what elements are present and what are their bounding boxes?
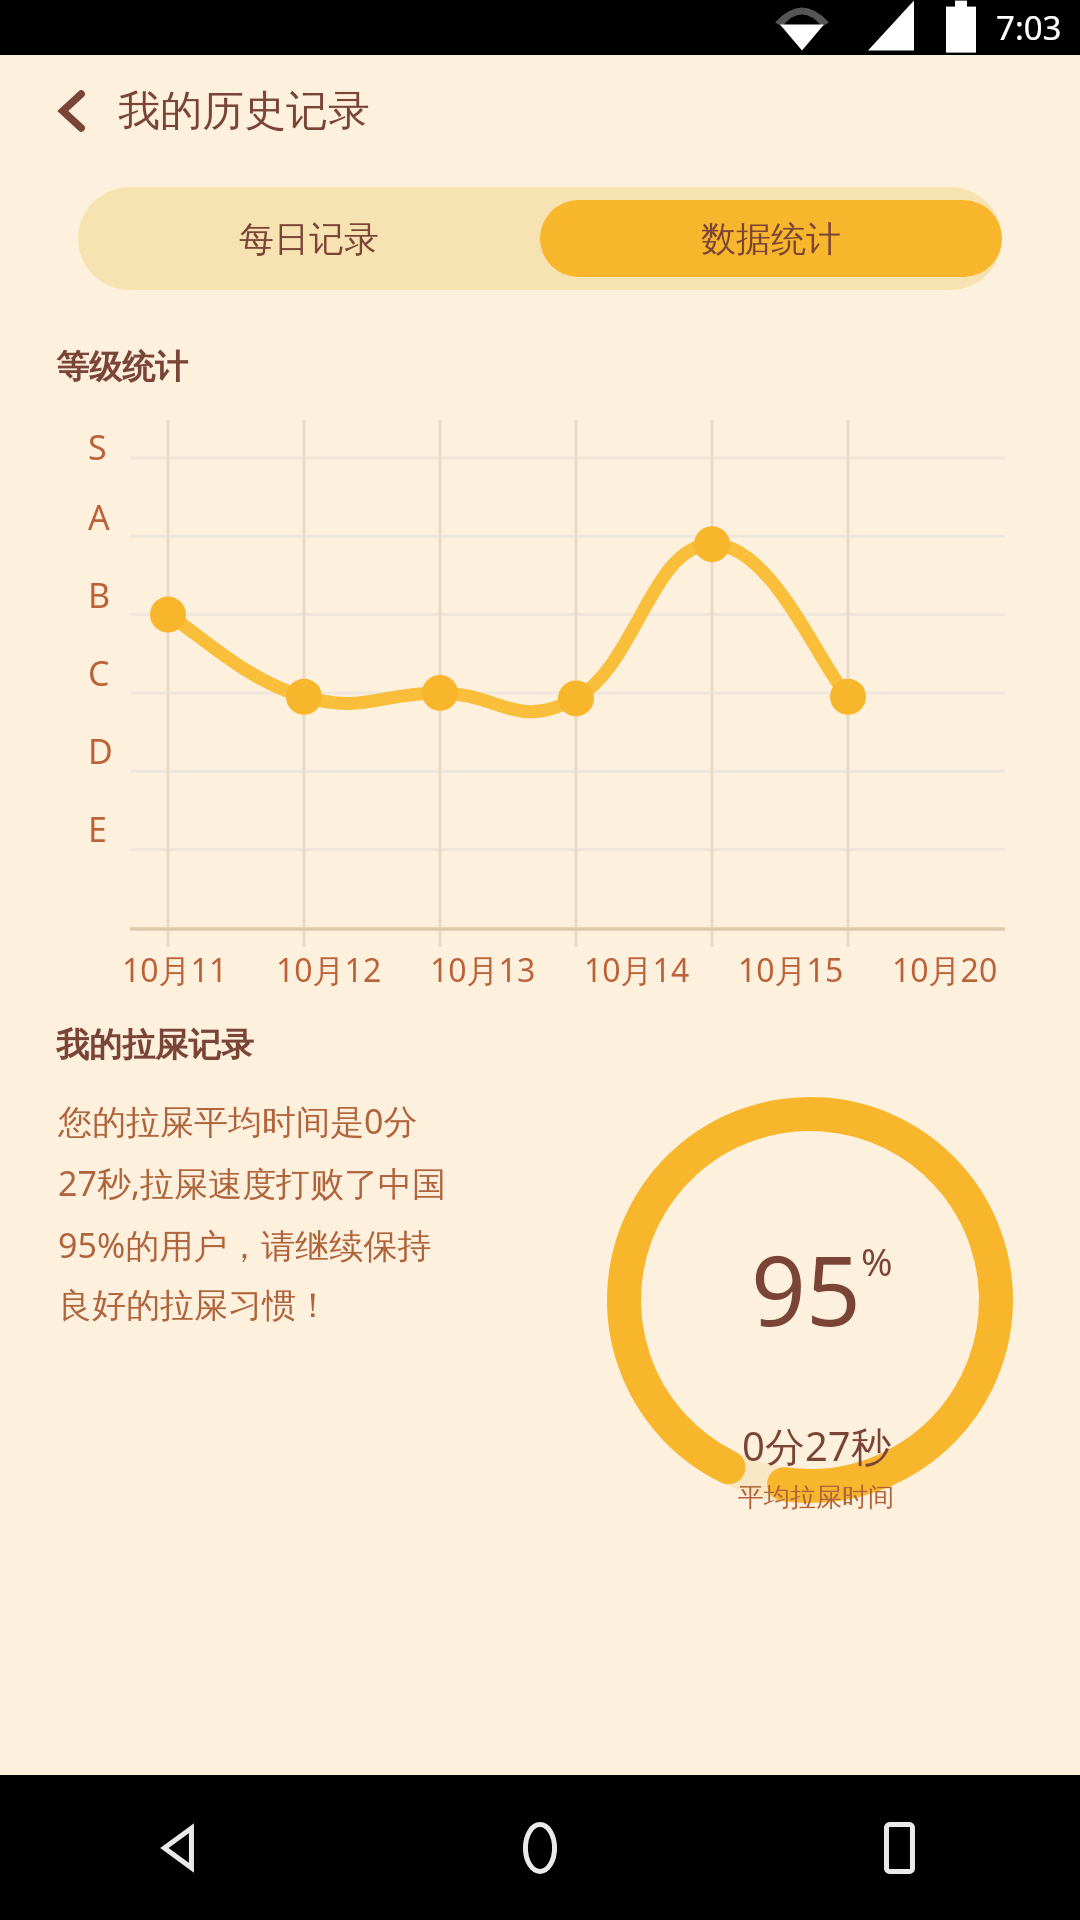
staticText: 10月15 bbox=[738, 948, 844, 992]
staticText: 95 bbox=[751, 1223, 861, 1354]
staticText: 数据统计 bbox=[701, 217, 841, 261]
staticText: 27秒,拉屎速度打败了中国 bbox=[58, 1160, 447, 1206]
staticText: 10月12 bbox=[276, 948, 382, 992]
staticText: 10月11 bbox=[122, 948, 228, 992]
staticText: C bbox=[88, 650, 110, 696]
button[interactable]: Home bbox=[360, 1775, 720, 1920]
staticText: 7:03 bbox=[996, 5, 1062, 50]
staticText: 您的拉屎平均时间是0分 bbox=[58, 1098, 418, 1144]
staticText: 10月20 bbox=[892, 948, 998, 992]
staticText: 95%的用户，请继续保持 bbox=[58, 1222, 432, 1268]
staticText: 良好的拉屎习惯！ bbox=[58, 1284, 330, 1327]
staticText: 我的拉屎记录 bbox=[56, 1024, 254, 1066]
staticText: 10月14 bbox=[584, 948, 690, 992]
staticText: 0分27秒 bbox=[742, 1418, 891, 1473]
button[interactable]: Back bbox=[0, 1775, 360, 1920]
staticText: D bbox=[88, 728, 113, 774]
staticText: A bbox=[88, 494, 110, 540]
staticText: S bbox=[88, 424, 107, 470]
staticText: 我的历史记录 bbox=[118, 85, 370, 138]
staticText: 等级统计 bbox=[56, 346, 188, 388]
button[interactable]: 每日记录 bbox=[78, 187, 540, 290]
button[interactable]: 数据统计 bbox=[540, 200, 1002, 277]
staticText: 10月13 bbox=[430, 948, 536, 992]
button[interactable]: Back bbox=[38, 77, 106, 145]
staticText: % bbox=[861, 1235, 893, 1287]
staticText: E bbox=[88, 806, 107, 852]
staticText: 平均拉屎时间 bbox=[738, 1481, 894, 1514]
staticText: 每日记录 bbox=[239, 217, 379, 261]
staticText: B bbox=[88, 572, 111, 618]
button[interactable]: Recent apps bbox=[720, 1775, 1080, 1920]
